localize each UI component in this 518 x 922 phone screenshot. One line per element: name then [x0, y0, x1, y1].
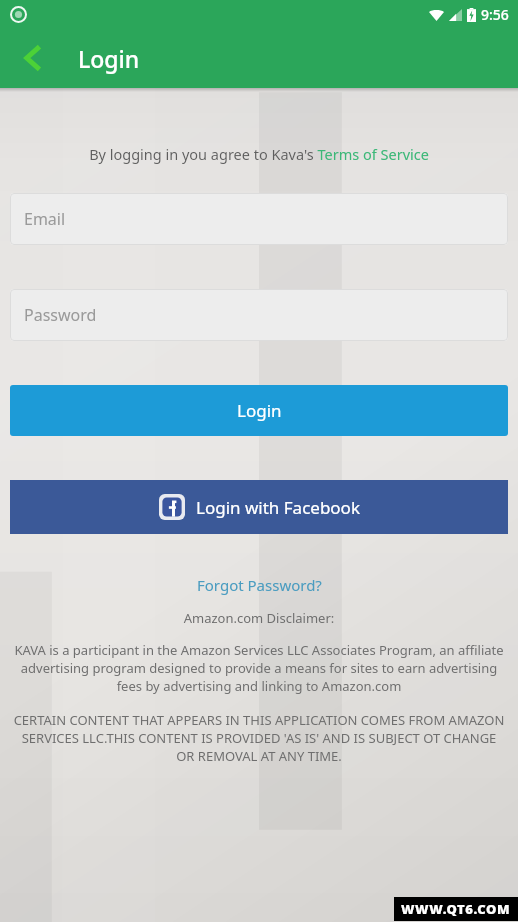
staticText: Login with Facebook — [196, 496, 360, 519]
button[interactable]: Back — [8, 34, 56, 82]
staticText: CERTAIN CONTENT THAT APPEARS IN THIS APP… — [11, 711, 507, 765]
button[interactable]: Forgot Password? — [197, 575, 322, 595]
staticText: 9:56 — [481, 5, 509, 24]
button[interactable]: Email — [10, 193, 508, 245]
button[interactable]: Password — [10, 289, 508, 341]
staticText: Email — [24, 208, 66, 230]
staticText: Amazon.com Disclaimer: — [0, 609, 518, 627]
button[interactable]: By logging in you agree to Kava's Terms … — [89, 144, 429, 164]
staticText: Login — [237, 399, 282, 422]
button[interactable]: Login — [10, 385, 508, 436]
button[interactable]: Login with Facebook — [10, 480, 508, 534]
staticText: Login — [78, 43, 140, 74]
staticText: KAVA is a participant in the Amazon Serv… — [11, 641, 507, 695]
staticText: WWW.QT6.COM — [401, 900, 511, 918]
staticText: Password — [24, 304, 97, 326]
